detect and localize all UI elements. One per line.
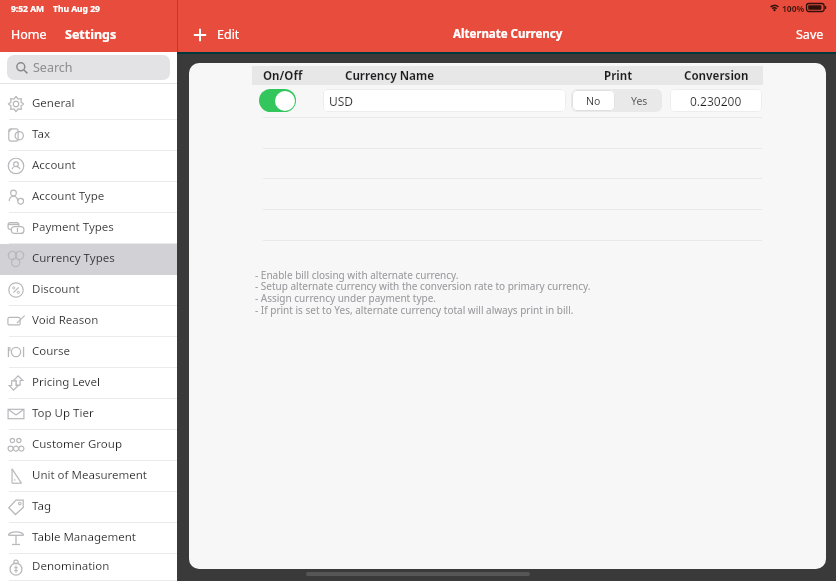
button[interactable]: Unit of Measurement (0, 461, 177, 492)
staticText: Home (11, 26, 47, 43)
staticText: 9:52 AM (11, 3, 45, 15)
button[interactable]: Payment Types (0, 213, 177, 244)
staticText: On/Off (263, 68, 303, 84)
button[interactable]: No (572, 90, 615, 111)
staticText: Currency Name (345, 68, 435, 84)
button[interactable]: Account (0, 151, 177, 182)
button[interactable]: Top Up Tier (0, 399, 177, 430)
staticText: Settings (65, 26, 117, 43)
button[interactable]: General (0, 89, 177, 120)
staticText: General (32, 95, 75, 111)
button[interactable]: Enable alternate currency (259, 89, 296, 112)
staticText: Tax (32, 126, 51, 142)
staticText: Customer Group (32, 436, 122, 452)
button[interactable]: Denomination (0, 554, 177, 581)
staticText: Payment Types (32, 219, 114, 235)
staticText: Void Reason (32, 312, 99, 328)
staticText: Alternate Currency (453, 26, 563, 42)
button[interactable]: Table Management (0, 523, 177, 554)
button[interactable]: Search (7, 55, 170, 80)
button[interactable]: Pricing Level (0, 368, 177, 399)
button[interactable]: Edit (191, 25, 242, 44)
staticText: Save (796, 26, 824, 43)
staticText: Currency Types (32, 250, 115, 266)
staticText: Tag (32, 498, 51, 514)
button[interactable]: Discount (0, 275, 177, 306)
staticText: Thu Aug 29 (53, 3, 100, 15)
staticText: 0.230200 (690, 93, 742, 109)
button[interactable]: Tax (0, 120, 177, 151)
staticText: Pricing Level (32, 374, 100, 390)
button[interactable]: Yes (616, 89, 662, 112)
staticText: Search (33, 59, 73, 76)
staticText: - Assign currency under payment type. (255, 291, 436, 305)
staticText: Conversion (684, 68, 749, 84)
button[interactable]: Void Reason (0, 306, 177, 337)
staticText: - If print is set to Yes, alternate curr… (255, 303, 574, 317)
staticText: Account (32, 157, 76, 173)
staticText: - Setup alternate currency with the conv… (255, 279, 591, 293)
staticText: Print (604, 68, 633, 84)
button[interactable]: 0.230200 (670, 89, 762, 112)
staticText: 100% (782, 3, 805, 15)
staticText: Unit of Measurement (32, 467, 148, 483)
button[interactable]: Currency Types (0, 244, 177, 275)
staticText: Top Up Tier (32, 405, 94, 421)
button[interactable]: Course (0, 337, 177, 368)
button[interactable]: Save (796, 26, 824, 43)
button[interactable]: Settings (65, 26, 117, 43)
staticText: Discount (32, 281, 80, 297)
staticText: - Enable bill closing with alternate cur… (255, 268, 459, 282)
staticText: No (586, 94, 601, 108)
staticText: USD (329, 93, 354, 109)
staticText: Table Management (32, 529, 136, 545)
button[interactable]: Account Type (0, 182, 177, 213)
staticText: Course (32, 343, 71, 359)
button[interactable]: USD (323, 89, 566, 112)
staticText: Denomination (32, 558, 110, 574)
staticText: Yes (631, 94, 648, 108)
staticText: Account Type (32, 188, 105, 204)
button[interactable]: Home (11, 26, 47, 43)
button[interactable]: Tag (0, 492, 177, 523)
staticText: Edit (217, 26, 240, 43)
button[interactable]: Customer Group (0, 430, 177, 461)
